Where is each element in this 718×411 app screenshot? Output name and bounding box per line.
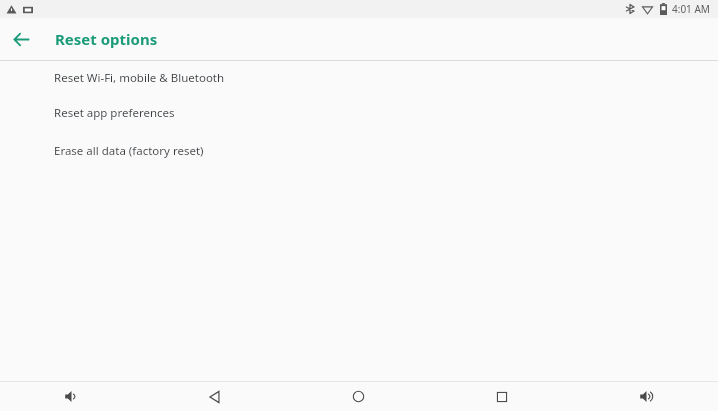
- button[interactable]: Reset Wi-Fi, mobile & Bluetooth: [0, 61, 718, 94]
- staticText: Reset options: [55, 29, 158, 49]
- staticText: 4:01 AM: [672, 2, 710, 16]
- button[interactable]: Reset app preferences: [0, 94, 718, 132]
- staticText: Reset Wi-Fi, mobile & Bluetooth: [54, 70, 225, 86]
- button[interactable]: Volume down: [0, 382, 143, 411]
- button[interactable]: Back: [143, 382, 286, 411]
- button[interactable]: Back: [7, 25, 35, 53]
- staticText: Erase all data (factory reset): [54, 143, 204, 159]
- staticText: Reset app preferences: [54, 105, 175, 121]
- button[interactable]: Recents: [430, 382, 574, 411]
- button[interactable]: Volume up: [574, 382, 718, 411]
- button[interactable]: Home: [286, 382, 430, 411]
- button[interactable]: Erase all data (factory reset): [0, 132, 718, 170]
